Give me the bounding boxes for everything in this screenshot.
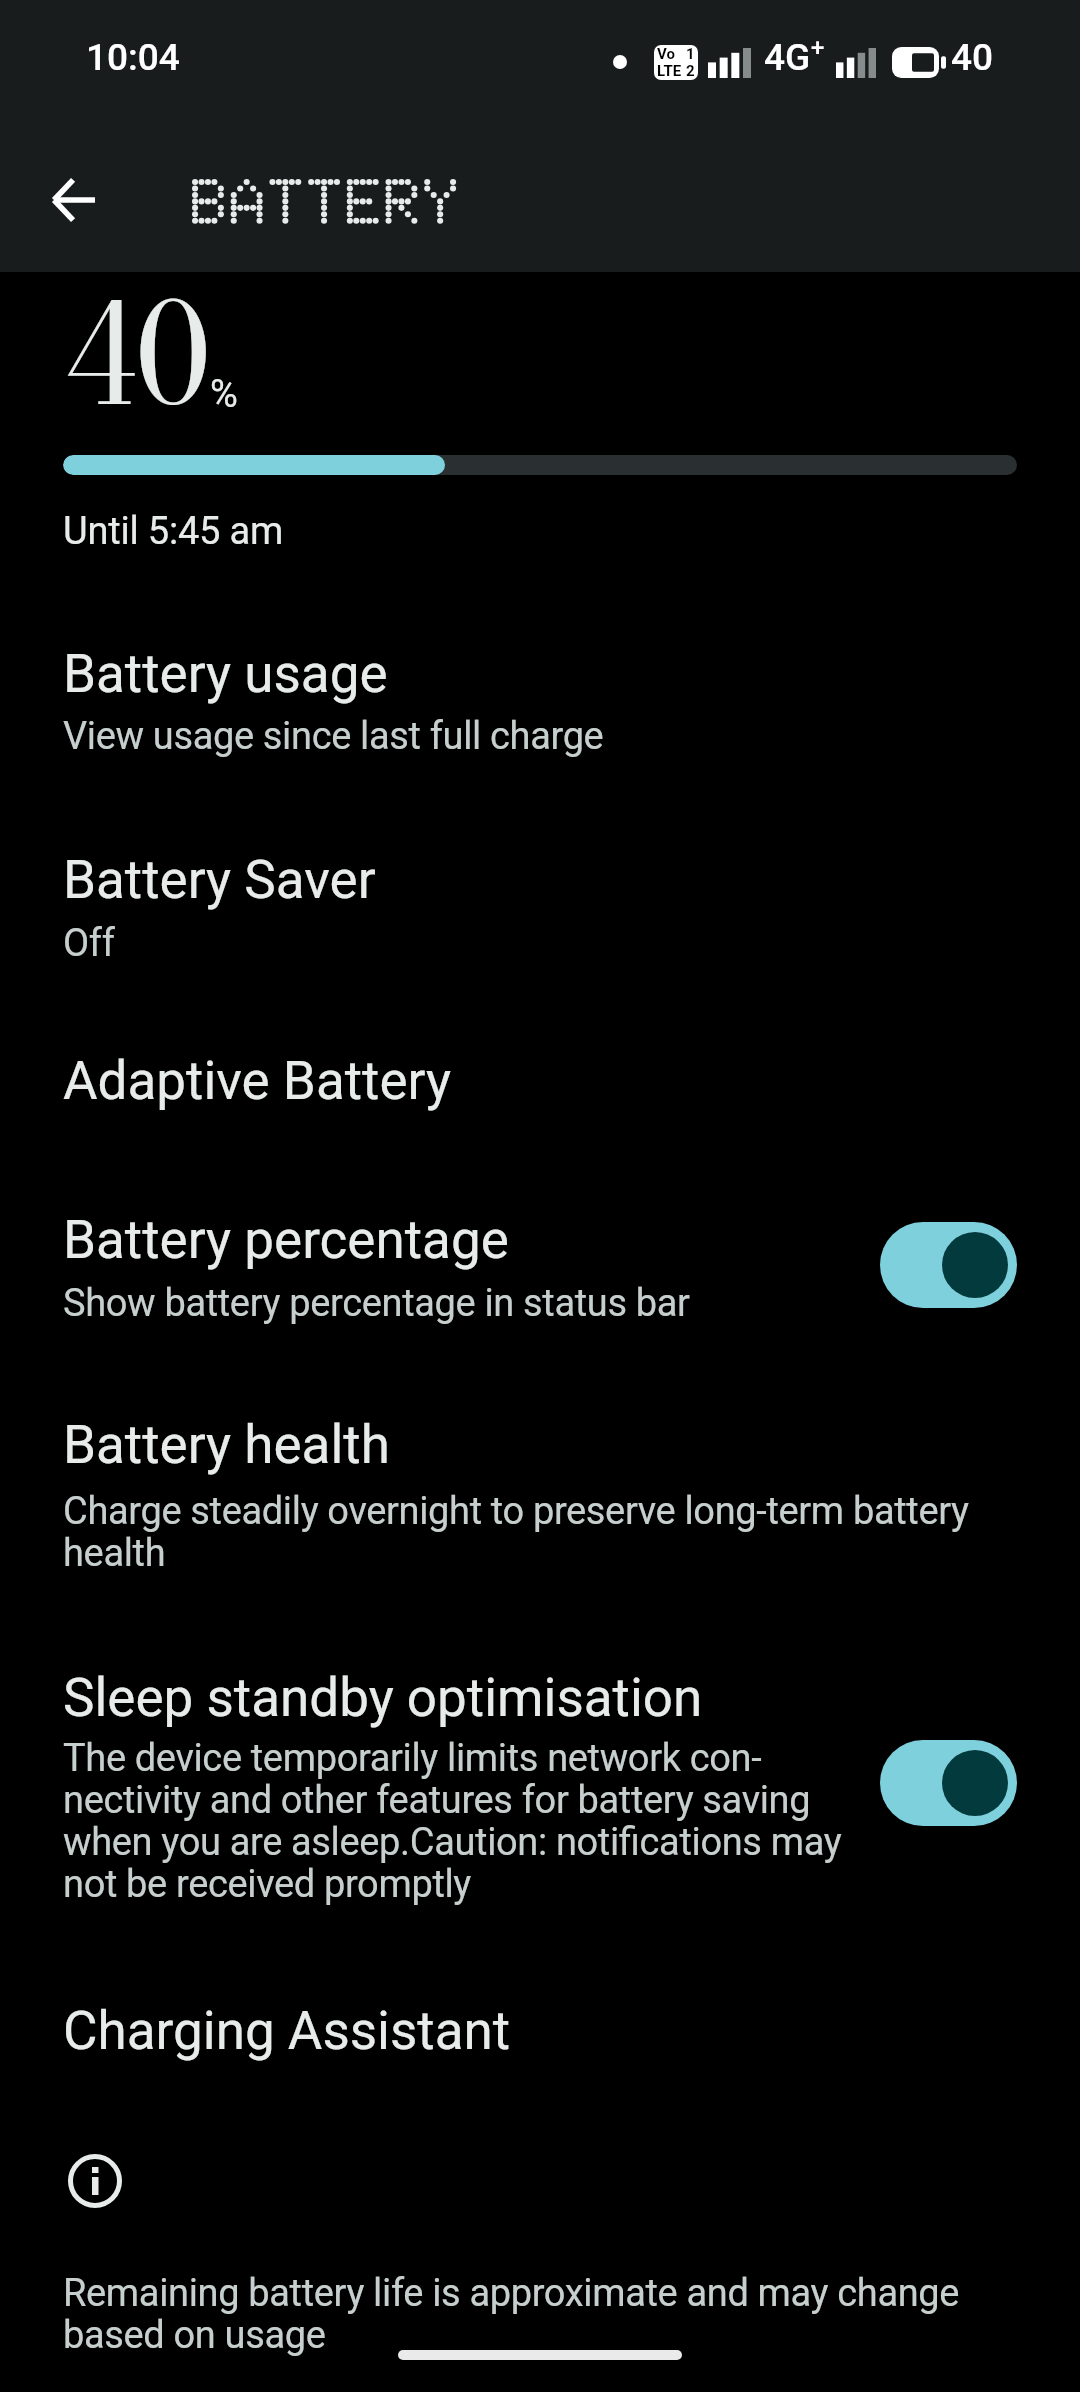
staticText: Show battery percentage in status bar xyxy=(63,1283,690,1325)
button[interactable]: Battery Saver xyxy=(0,825,1080,977)
staticText: The device temporarily limits network co… xyxy=(63,1738,853,1906)
staticText: 40 xyxy=(64,248,211,460)
staticText: LTE xyxy=(657,63,682,79)
button[interactable]: Toggle Sleep standby optimisation xyxy=(880,1740,1017,1826)
staticText: Adaptive Battery xyxy=(63,1050,452,1112)
staticText: Off xyxy=(63,923,115,965)
staticText: 4G xyxy=(764,36,811,79)
staticText: Battery usage xyxy=(63,643,388,705)
staticText: Battery Saver xyxy=(63,849,376,911)
staticText: Charge steadily overnight to preserve lo… xyxy=(63,1491,993,1575)
staticText: % xyxy=(210,372,238,417)
button[interactable]: Battery usage xyxy=(0,619,1080,771)
button[interactable]: Charging Assistant xyxy=(0,1976,1080,2086)
staticText: 10:04 xyxy=(86,36,180,79)
button[interactable]: Information xyxy=(63,2149,127,2213)
button[interactable]: Battery percentage xyxy=(0,1185,1080,1337)
staticText: Vo xyxy=(657,46,675,62)
staticText: 2 xyxy=(686,63,695,79)
staticText: Battery percentage xyxy=(63,1209,509,1271)
staticText: Remaining battery life is approximate an… xyxy=(63,2273,1023,2357)
staticText: View usage since last full charge xyxy=(63,716,604,758)
staticText: Until 5:45 am xyxy=(63,509,284,554)
button[interactable]: Battery health xyxy=(0,1390,1080,1584)
staticText: Sleep standby optimisation xyxy=(63,1667,703,1729)
button[interactable]: Adaptive Battery xyxy=(0,1026,1080,1136)
button[interactable]: Back xyxy=(30,155,118,243)
button[interactable]: Sleep standby optimisation xyxy=(0,1643,1080,1921)
staticText: 1 xyxy=(686,46,695,62)
staticText: 40 xyxy=(951,36,994,79)
staticText: Charging Assistant xyxy=(63,2000,511,2062)
button[interactable]: Toggle Battery percentage xyxy=(880,1222,1017,1308)
staticText: Battery health xyxy=(63,1414,390,1476)
staticText: + xyxy=(811,34,825,62)
